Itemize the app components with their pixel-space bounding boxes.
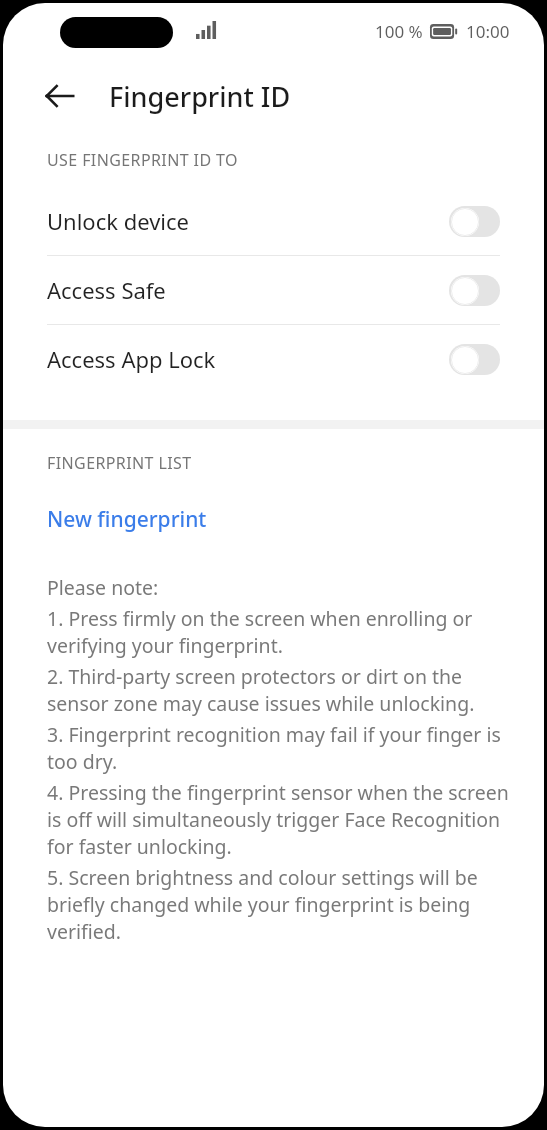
staticText: FINGERPRINT LIST <box>47 452 192 474</box>
button[interactable]: New fingerprint <box>3 503 544 536</box>
button[interactable]: Unlock device <box>3 187 544 255</box>
staticText: 4. Pressing the fingerprint sensor when … <box>47 779 514 860</box>
staticText: 2. Third-party screen protectors or dirt… <box>47 663 514 717</box>
staticText: 10:00 <box>466 20 510 43</box>
staticText: Unlock device <box>47 206 190 236</box>
button[interactable]: Back <box>33 69 87 123</box>
staticText: 1. Press firmly on the screen when enrol… <box>47 605 514 659</box>
staticText: Fingerprint ID <box>109 78 291 115</box>
button[interactable]: Access App Lock <box>3 325 544 393</box>
staticText: Access App Lock <box>47 344 216 374</box>
staticText: Please note: <box>47 574 159 601</box>
staticText: 100 % <box>375 20 423 43</box>
staticText: 5. Screen brightness and colour settings… <box>47 864 514 945</box>
staticText: USE FINGERPRINT ID TO <box>47 149 238 171</box>
staticText: New fingerprint <box>47 505 207 534</box>
staticText: 3. Fingerprint recognition may fail if y… <box>47 721 514 775</box>
button[interactable]: Access Safe <box>3 256 544 324</box>
staticText: Access Safe <box>47 275 166 305</box>
